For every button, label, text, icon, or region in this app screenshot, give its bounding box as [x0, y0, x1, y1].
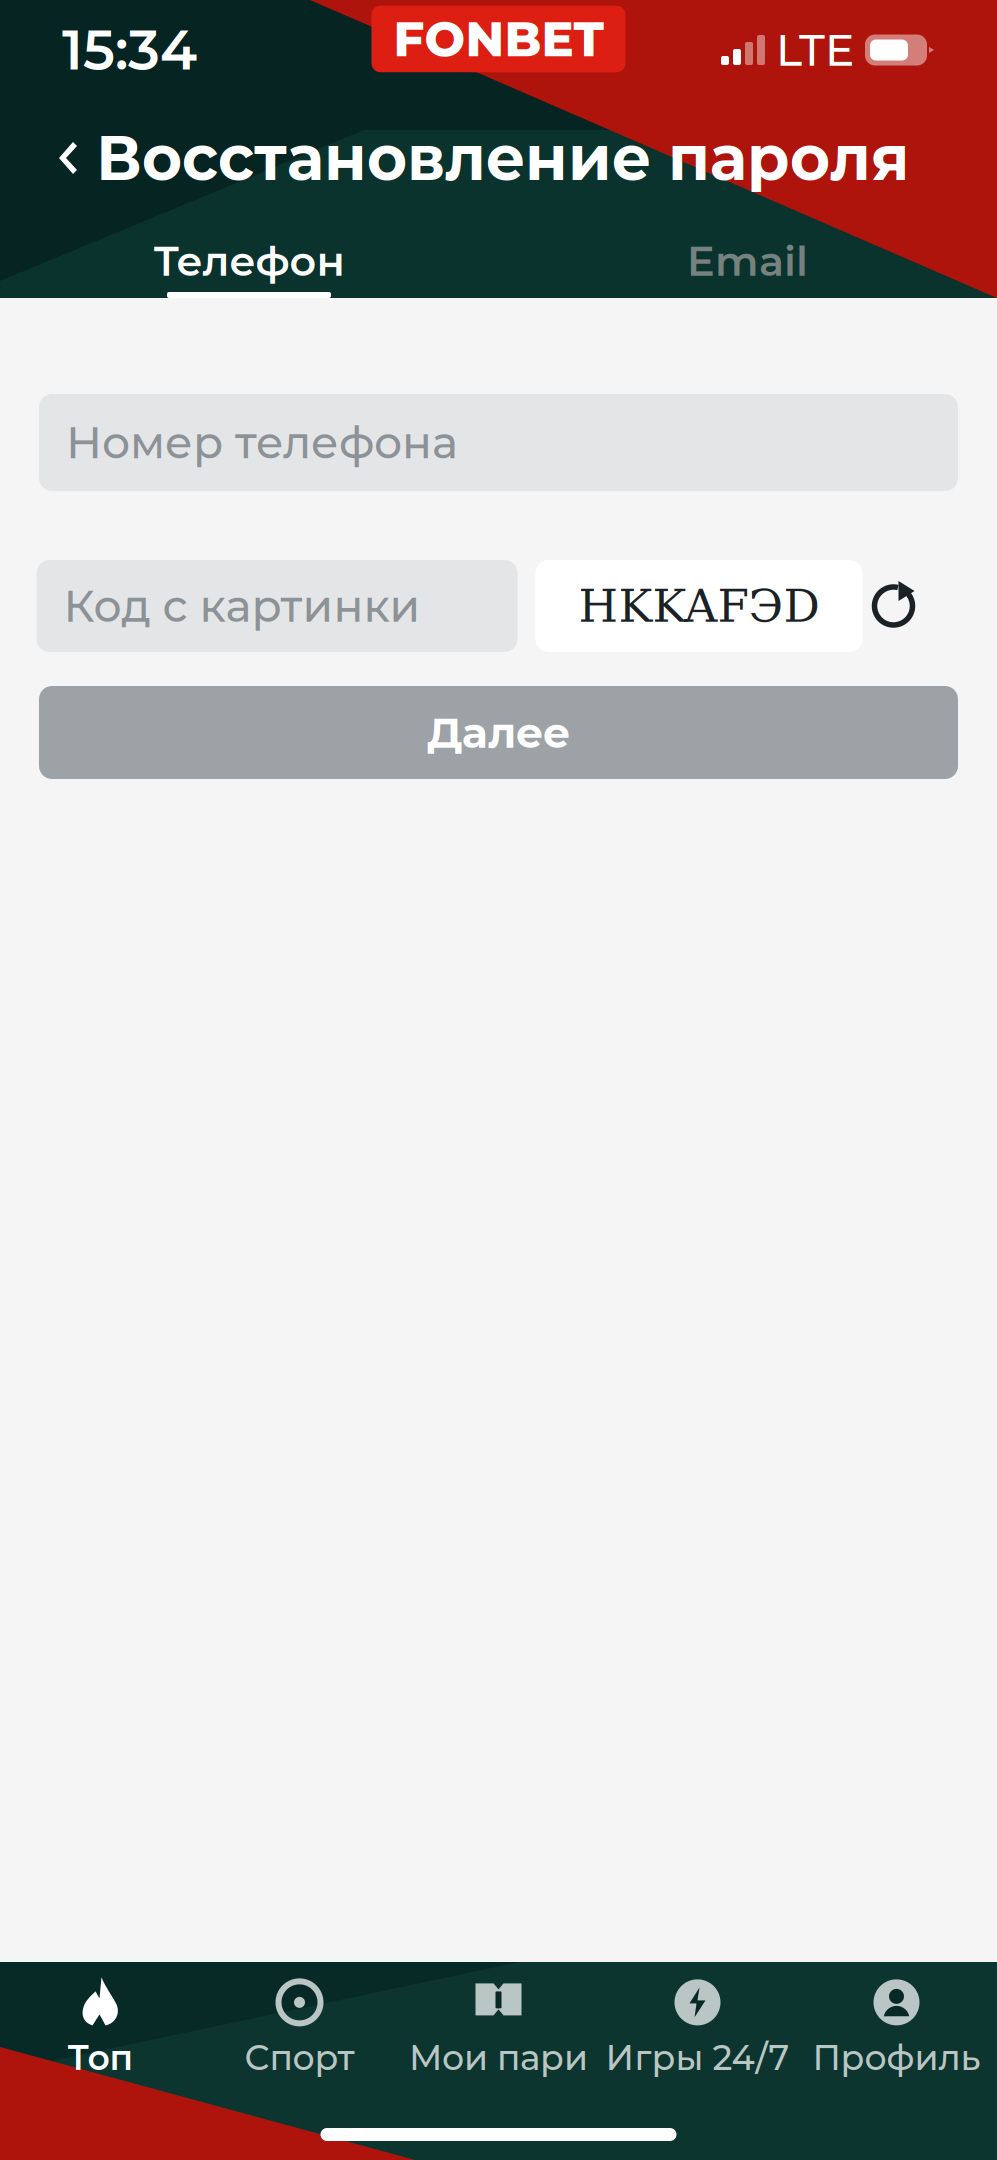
button[interactable]: Далее: [39, 686, 958, 779]
button[interactable]: Обновить картинку: [870, 581, 918, 631]
button[interactable]: Мои пари: [399, 1970, 598, 2086]
staticText: FONBET: [393, 10, 603, 68]
button[interactable]: Номер телефона: [39, 394, 958, 491]
button[interactable]: Телефон: [0, 230, 498, 298]
button[interactable]: Спорт: [200, 1970, 399, 2086]
button[interactable]: Профиль: [797, 1970, 996, 2086]
staticText: Email: [687, 236, 808, 286]
button[interactable]: Игры 24/7: [598, 1970, 797, 2086]
staticText: LTE: [776, 23, 854, 77]
staticText: Код с картинки: [63, 579, 420, 633]
staticText: Телефон: [153, 236, 344, 286]
staticText: 15:34: [62, 17, 197, 83]
staticText: Далее: [427, 706, 570, 758]
staticText: Топ: [67, 2036, 133, 2079]
button[interactable]: Назад: [40, 123, 96, 193]
staticText: Спорт: [244, 2036, 354, 2079]
staticText: HKKAFЭD: [578, 580, 819, 632]
staticText: Восстановление пароля: [96, 121, 910, 195]
button[interactable]: Топ: [1, 1970, 200, 2086]
button[interactable]: Email: [498, 230, 997, 298]
staticText: Профиль: [812, 2036, 980, 2079]
staticText: Мои пари: [409, 2036, 588, 2079]
staticText: Игры 24/7: [605, 2036, 789, 2079]
staticText: Номер телефона: [66, 416, 458, 469]
button[interactable]: Код с картинки: [36, 560, 517, 652]
